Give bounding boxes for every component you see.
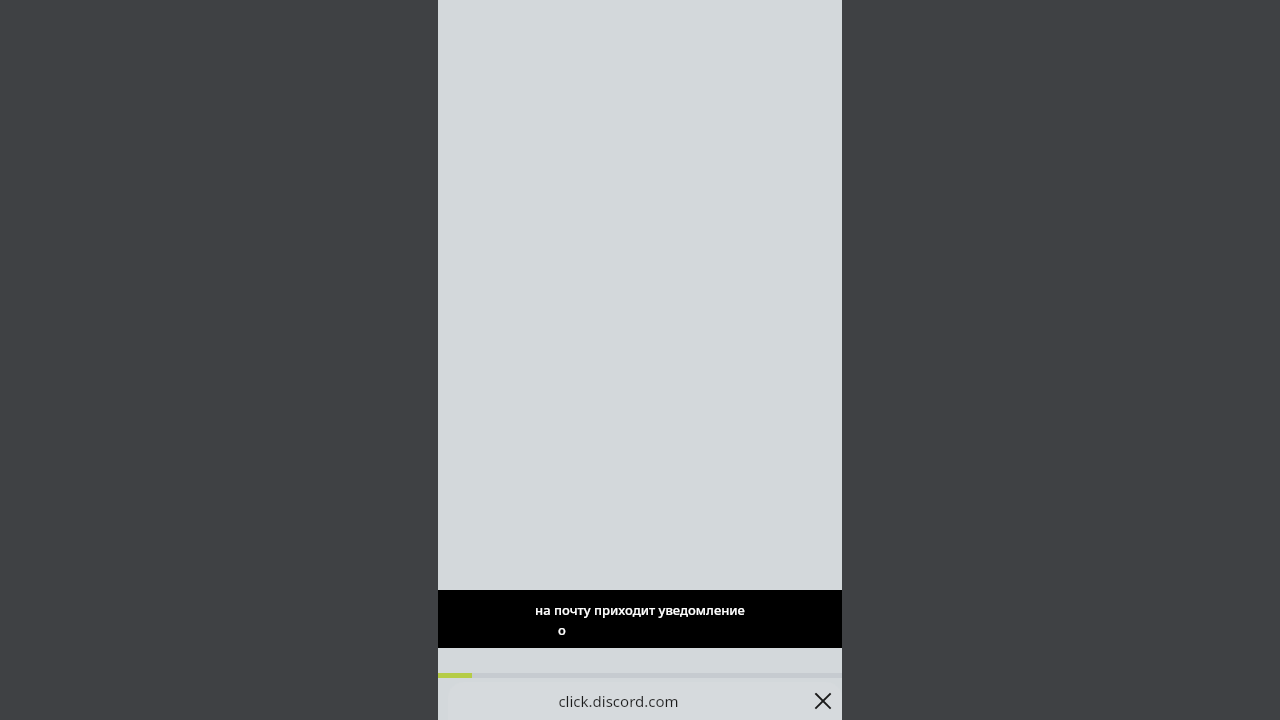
button[interactable]: Close	[804, 682, 842, 720]
staticText: о	[558, 621, 566, 639]
staticText: click.discord.com	[558, 691, 679, 711]
staticText: на почту приходит уведомление	[535, 601, 745, 619]
button[interactable]: click.discord.com	[448, 682, 804, 720]
button[interactable]: click.discord.com	[448, 682, 842, 720]
